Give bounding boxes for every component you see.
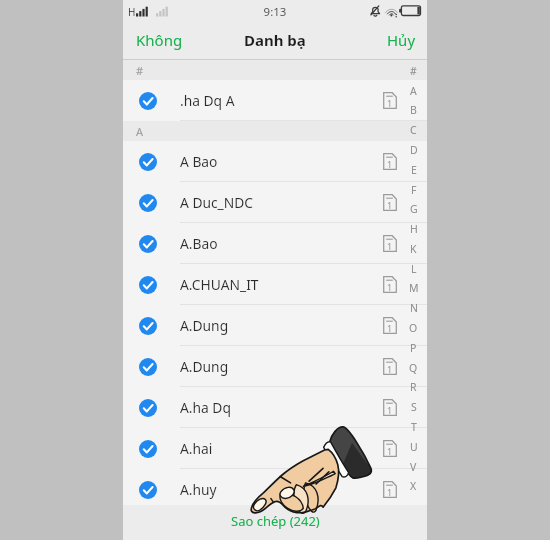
- staticText: B: [410, 103, 417, 117]
- staticText: C: [410, 123, 417, 137]
- button[interactable]: M: [400, 278, 427, 298]
- button[interactable]: P: [400, 338, 427, 358]
- staticText: 1: [387, 281, 393, 293]
- staticText: K: [410, 242, 417, 256]
- staticText: 1: [387, 240, 393, 252]
- staticText: H: [410, 222, 418, 236]
- staticText: Danh bạ: [244, 30, 306, 50]
- staticText: 1: [387, 322, 393, 334]
- button[interactable]: A.huy: [123, 469, 427, 510]
- button[interactable]: L: [400, 259, 427, 279]
- staticText: Sao chép (242): [231, 512, 320, 530]
- staticText: M: [409, 281, 419, 295]
- staticText: D: [410, 143, 418, 157]
- button[interactable]: C: [400, 120, 427, 140]
- staticText: R: [410, 380, 417, 394]
- button[interactable]: A: [400, 81, 427, 101]
- button[interactable]: Sao chép (242): [123, 505, 427, 540]
- staticText: G: [410, 202, 418, 216]
- staticText: A.Bao: [180, 234, 218, 253]
- button[interactable]: B: [400, 100, 427, 120]
- staticText: A: [410, 84, 417, 98]
- staticText: V: [410, 460, 417, 474]
- button[interactable]: .ha Dq A: [123, 80, 427, 121]
- button[interactable]: E: [400, 160, 427, 180]
- staticText: 1: [387, 199, 393, 211]
- button[interactable]: A.Dung: [123, 305, 427, 346]
- staticText: A Bao: [180, 152, 218, 171]
- staticText: T: [411, 420, 417, 434]
- other: Pointing hand illustration: [243, 415, 388, 525]
- button[interactable]: A.Bao: [123, 223, 427, 264]
- staticText: A Duc_NDC: [180, 193, 254, 212]
- staticText: 1: [387, 404, 393, 416]
- staticText: A.hai: [180, 439, 213, 458]
- staticText: A.ha Dq: [180, 398, 231, 417]
- button[interactable]: A.Dung: [123, 346, 427, 387]
- staticText: Q: [409, 361, 418, 375]
- staticText: 1: [387, 445, 393, 457]
- staticText: #: [410, 64, 417, 78]
- staticText: A.huy: [180, 480, 217, 499]
- staticText: #: [136, 63, 144, 78]
- staticText: X: [410, 479, 417, 493]
- staticText: E: [411, 163, 417, 177]
- button[interactable]: K: [400, 239, 427, 259]
- button[interactable]: Q: [400, 358, 427, 378]
- button[interactable]: Hủy: [374, 22, 427, 58]
- button[interactable]: F: [400, 180, 427, 200]
- button[interactable]: U: [400, 437, 427, 457]
- staticText: N: [410, 301, 418, 315]
- staticText: A.Dung: [180, 357, 229, 376]
- staticText: .ha Dq A: [180, 91, 235, 110]
- staticText: A.CHUAN_IT: [180, 275, 259, 294]
- staticText: Hủy: [387, 30, 416, 50]
- button[interactable]: N: [400, 298, 427, 318]
- staticText: P: [410, 341, 417, 355]
- button[interactable]: V: [400, 457, 427, 477]
- button[interactable]: G: [400, 199, 427, 219]
- staticText: S: [411, 400, 417, 414]
- button[interactable]: A Bao: [123, 141, 427, 182]
- button[interactable]: T: [400, 417, 427, 437]
- button[interactable]: A Duc_NDC: [123, 182, 427, 223]
- button[interactable]: Không: [123, 22, 196, 58]
- staticText: Không: [136, 30, 183, 50]
- staticText: A.Dung: [180, 316, 229, 335]
- staticText: O: [409, 321, 418, 335]
- staticText: F: [411, 183, 417, 197]
- staticText: L: [411, 262, 417, 276]
- button[interactable]: A.hai: [123, 428, 427, 469]
- button[interactable]: D: [400, 140, 427, 160]
- staticText: 9:13: [123, 4, 427, 20]
- button[interactable]: H: [400, 219, 427, 239]
- staticText: H: [128, 5, 136, 19]
- button[interactable]: A.CHUAN_IT: [123, 264, 427, 305]
- button[interactable]: O: [400, 318, 427, 338]
- button[interactable]: X: [400, 476, 427, 496]
- button[interactable]: R: [400, 377, 427, 397]
- staticText: 1: [387, 97, 393, 109]
- button[interactable]: A.ha Dq: [123, 387, 427, 428]
- staticText: 1: [387, 158, 393, 170]
- staticText: 1: [387, 486, 393, 498]
- staticText: 1: [387, 363, 393, 375]
- staticText: A: [136, 124, 144, 139]
- button[interactable]: S: [400, 397, 427, 417]
- staticText: U: [410, 440, 418, 454]
- button[interactable]: #: [400, 61, 427, 81]
